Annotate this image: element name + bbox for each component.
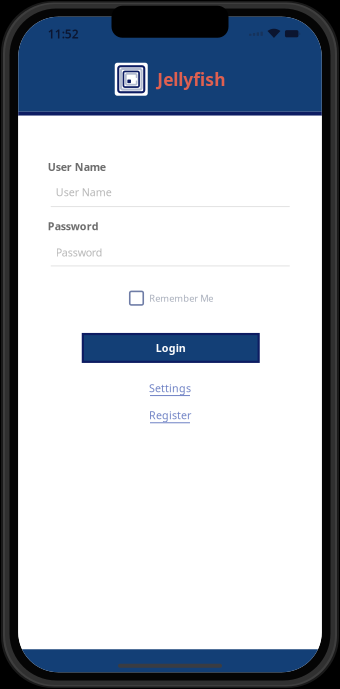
staticText: Register <box>149 408 191 422</box>
button[interactable]: Register <box>18 408 322 423</box>
staticText: User Name <box>56 185 112 199</box>
staticText: Password <box>56 245 103 259</box>
staticText: Password <box>48 219 99 233</box>
staticText: Remember Me <box>149 292 213 304</box>
staticText: Login <box>156 341 186 355</box>
button[interactable]: Login <box>82 333 260 363</box>
button[interactable]: Settings <box>18 381 322 396</box>
staticText: 11:52 <box>48 26 79 42</box>
button[interactable]: Remember Me <box>18 291 322 305</box>
staticText: Jellyfish <box>157 68 225 91</box>
staticText: Settings <box>149 381 191 395</box>
staticText: User Name <box>48 160 106 174</box>
